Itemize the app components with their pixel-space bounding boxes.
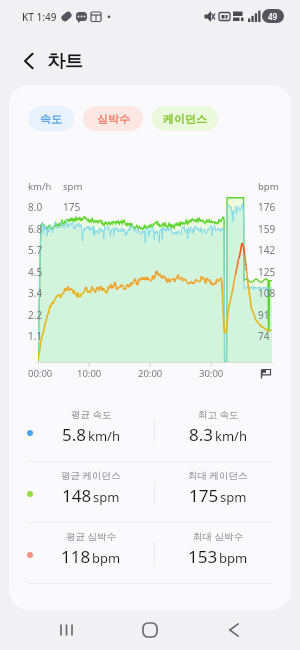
- staticText: 30:00: [199, 367, 224, 380]
- staticText: 00:00: [28, 367, 53, 380]
- staticText: 4.5: [28, 265, 43, 279]
- staticText: 49: [268, 11, 278, 22]
- button[interactable]: Home: [128, 610, 172, 650]
- button[interactable]: 평균 속도: [9, 401, 291, 462]
- staticText: 20:00: [138, 367, 163, 380]
- button[interactable]: 속도: [28, 106, 74, 131]
- staticText: 153: [188, 545, 218, 568]
- staticText: 6.8: [28, 222, 43, 236]
- staticText: 평균 심박수: [66, 530, 116, 543]
- staticText: 176: [258, 200, 276, 214]
- staticText: 속도: [40, 112, 62, 126]
- staticText: 3.4: [28, 286, 43, 300]
- staticText: 5.8: [62, 423, 87, 446]
- button[interactable]: Back: [12, 44, 46, 78]
- staticText: 5.7: [28, 243, 43, 257]
- staticText: 91: [258, 308, 270, 322]
- staticText: spm: [220, 488, 247, 506]
- button[interactable]: Finish: [258, 366, 272, 380]
- staticText: 평균 속도: [71, 408, 112, 421]
- button[interactable]: 평균 케이던스: [9, 462, 291, 523]
- staticText: 175: [189, 484, 219, 507]
- staticText: bpm: [258, 180, 279, 193]
- staticText: KT 1:49: [22, 10, 57, 24]
- staticText: spm: [93, 488, 120, 506]
- staticText: km/h: [88, 427, 120, 445]
- staticText: 최대 케이던스: [188, 469, 248, 482]
- staticText: spm: [63, 180, 83, 193]
- staticText: 2.2: [28, 308, 43, 322]
- staticText: 1.1: [28, 329, 43, 343]
- button[interactable]: 케이던스: [152, 106, 218, 131]
- button[interactable]: Back: [212, 610, 256, 650]
- staticText: bpm: [219, 549, 248, 567]
- staticText: 108: [258, 286, 276, 300]
- staticText: 125: [258, 265, 276, 279]
- staticText: 최대 심박수: [193, 530, 243, 543]
- staticText: 케이던스: [163, 112, 207, 126]
- staticText: 142: [258, 243, 276, 257]
- button[interactable]: Recents: [44, 610, 88, 650]
- staticText: 118: [61, 545, 91, 568]
- staticText: 8.0: [28, 200, 43, 214]
- staticText: 159: [258, 222, 276, 236]
- staticText: km/h: [215, 427, 247, 445]
- staticText: 148: [62, 484, 92, 507]
- staticText: 74: [258, 329, 270, 343]
- staticText: km/h: [28, 180, 52, 193]
- staticText: 심박수: [97, 112, 130, 126]
- staticText: 10:00: [77, 367, 102, 380]
- staticText: bpm: [92, 549, 121, 567]
- button[interactable]: 심박수: [83, 106, 143, 131]
- staticText: 차트: [47, 50, 83, 73]
- staticText: 최고 속도: [198, 408, 239, 421]
- staticText: 평균 케이던스: [61, 469, 121, 482]
- staticText: 8.3: [189, 423, 214, 446]
- button[interactable]: 평균 심박수: [9, 523, 291, 584]
- staticText: 175: [63, 200, 81, 214]
